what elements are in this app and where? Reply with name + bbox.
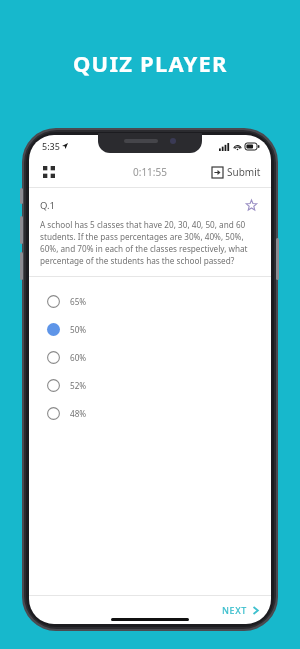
staticText: Submit: [227, 165, 261, 179]
staticText: QUIZ PLAYER: [73, 48, 228, 78]
button[interactable]: Question grid: [36, 159, 62, 185]
staticText: 50%: [70, 324, 87, 335]
button[interactable]: 65%: [29, 287, 271, 315]
staticText: Q.1: [40, 199, 56, 212]
button[interactable]: Bookmark question: [242, 196, 260, 214]
staticText: 65%: [70, 296, 87, 307]
staticText: NEXT: [222, 604, 247, 616]
staticText: 5:35: [42, 140, 60, 152]
button[interactable]: 52%: [29, 371, 271, 399]
staticText: A school has 5 classes that have 20, 30,…: [40, 219, 260, 266]
button[interactable]: 60%: [29, 343, 271, 371]
button[interactable]: 50%: [29, 315, 271, 343]
staticText: 52%: [70, 380, 87, 391]
staticText: 0:11:55: [133, 165, 167, 179]
button[interactable]: 48%: [29, 399, 271, 427]
staticText: 60%: [70, 352, 87, 363]
staticText: 48%: [70, 408, 87, 419]
button[interactable]: Submit: [210, 161, 263, 183]
button[interactable]: NEXT: [219, 600, 263, 620]
